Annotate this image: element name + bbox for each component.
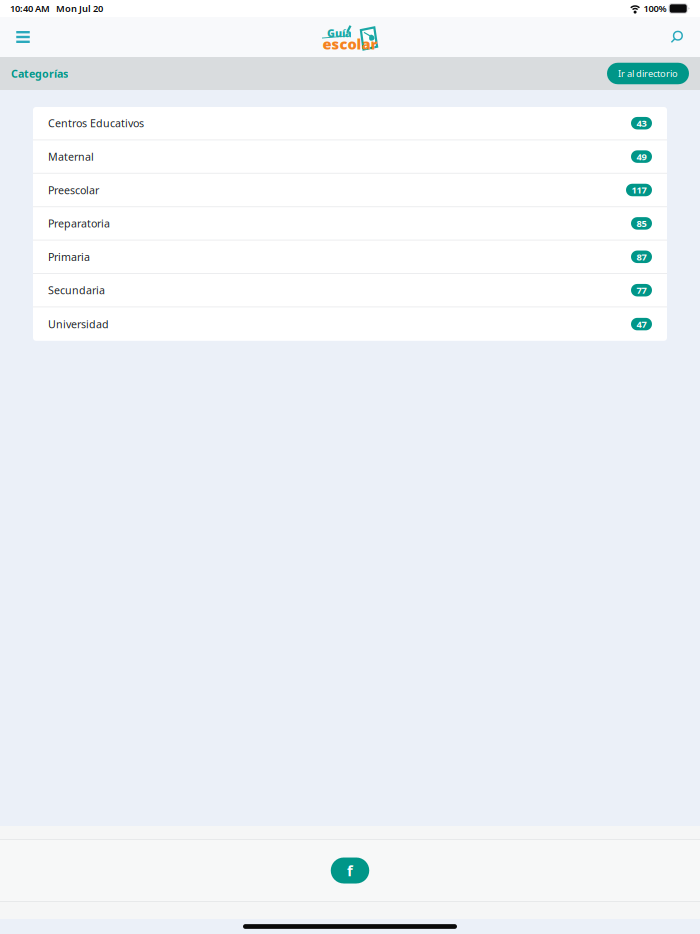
staticText: Preparatoria xyxy=(48,216,110,230)
button[interactable]: Preescolar xyxy=(33,174,667,207)
button[interactable]: Secundaria xyxy=(33,274,667,307)
staticText: Preescolar xyxy=(48,183,99,197)
staticText: Mon Jul 20 xyxy=(50,2,103,15)
staticText: 49 xyxy=(636,150,646,163)
button[interactable]: Menu xyxy=(5,19,41,55)
button[interactable]: Maternal xyxy=(33,140,667,174)
staticText: Categorías xyxy=(11,66,68,81)
staticText: 10:40 AM xyxy=(10,2,50,15)
staticText: 77 xyxy=(636,284,646,296)
staticText: 87 xyxy=(636,251,646,263)
staticText: 47 xyxy=(636,318,646,330)
staticText: Ir al directorio xyxy=(618,67,678,80)
staticText: Primaria xyxy=(48,250,90,264)
button[interactable]: Ir al directorio xyxy=(607,63,689,84)
button[interactable]: Universidad xyxy=(33,307,667,341)
button[interactable]: Preparatoria xyxy=(33,207,667,241)
staticText: 100% xyxy=(642,2,669,15)
staticText: Maternal xyxy=(48,149,94,164)
staticText: Centros Educativos xyxy=(48,116,144,130)
staticText: Secundaria xyxy=(48,283,105,297)
staticText: 117 xyxy=(631,184,646,196)
button[interactable]: Facebook xyxy=(331,857,369,883)
staticText: Universidad xyxy=(48,317,109,331)
staticText: 43 xyxy=(636,117,646,129)
button[interactable]: Centros Educativos xyxy=(33,107,667,140)
staticText: 85 xyxy=(636,217,646,230)
staticText: Guía xyxy=(327,26,352,40)
button[interactable]: Search xyxy=(659,19,695,55)
staticText: f xyxy=(347,861,353,880)
staticText: escolar xyxy=(322,34,377,53)
button[interactable]: Primaria xyxy=(33,241,667,274)
